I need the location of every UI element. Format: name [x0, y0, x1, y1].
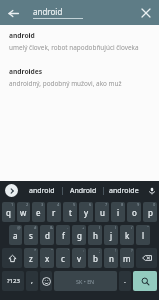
staticText: r	[52, 207, 56, 218]
button[interactable]: More suggestions	[5, 184, 18, 197]
staticText: d	[45, 230, 50, 241]
button[interactable]: androide	[104, 181, 144, 200]
button[interactable]: Clear query	[137, 4, 155, 22]
staticText: 0	[153, 202, 156, 207]
staticText: (	[99, 225, 101, 230]
button[interactable]: Backspace	[136, 248, 157, 268]
button[interactable]: l	[136, 225, 150, 245]
staticText: x	[45, 253, 50, 264]
button[interactable]: .	[119, 271, 131, 291]
staticText: &	[50, 225, 53, 230]
button[interactable]: r	[47, 202, 61, 222]
button[interactable]: u	[95, 202, 109, 222]
staticText: .	[124, 276, 126, 286]
staticText: ?123	[7, 277, 20, 285]
staticText: androides	[9, 67, 43, 76]
staticText: q	[6, 207, 11, 218]
button[interactable]: Emoji	[40, 271, 52, 291]
staticText: android	[9, 31, 35, 40]
button[interactable]: s	[24, 225, 38, 245]
staticText: '	[68, 248, 69, 253]
staticText: u	[100, 207, 105, 218]
button[interactable]: android	[0, 30, 159, 53]
staticText: *	[34, 248, 37, 253]
staticText: w	[20, 207, 27, 218]
staticText: e	[36, 207, 41, 218]
button[interactable]: v	[72, 248, 86, 268]
button[interactable]: b	[88, 248, 102, 268]
staticText: "	[51, 248, 53, 253]
staticText: o	[132, 207, 137, 218]
button[interactable]: a	[9, 225, 22, 245]
staticText: h	[93, 230, 98, 241]
staticText: android	[33, 6, 63, 17]
staticText: android	[29, 186, 55, 196]
button[interactable]: o	[127, 202, 141, 222]
staticText: n	[109, 253, 114, 264]
staticText: s	[29, 230, 33, 241]
button[interactable]: c	[56, 248, 70, 268]
button[interactable]: q	[2, 202, 15, 222]
button[interactable]: d	[40, 225, 54, 245]
button[interactable]: ,	[26, 271, 38, 291]
staticText: ;	[99, 248, 101, 253]
staticText: l	[142, 230, 145, 241]
staticText: ?	[131, 248, 133, 253]
staticText: 8	[121, 202, 124, 207]
staticText: p	[148, 207, 153, 218]
staticText: umelý človek, robot napodobňujúci človek…	[9, 43, 139, 52]
button[interactable]: g	[72, 225, 86, 245]
button[interactable]: x	[40, 248, 54, 268]
staticText: j	[110, 230, 113, 241]
button[interactable]: j	[104, 225, 118, 245]
button[interactable]: Voice input	[144, 181, 159, 200]
button[interactable]: androides	[0, 66, 159, 89]
button[interactable]: z	[24, 248, 38, 268]
button[interactable]: w	[17, 202, 30, 222]
button[interactable]: h	[88, 225, 102, 245]
button[interactable]: Back	[3, 3, 23, 23]
staticText: @	[17, 225, 21, 230]
staticText: ,	[31, 276, 33, 286]
staticText: 7	[105, 202, 108, 207]
staticText: /	[131, 225, 133, 230]
button[interactable]: p	[143, 202, 157, 222]
button[interactable]: SK • EN	[54, 271, 117, 291]
button[interactable]: y	[79, 202, 93, 222]
staticText: m	[123, 253, 131, 264]
staticText: 2	[26, 202, 29, 207]
staticText: g	[77, 230, 82, 241]
staticText: +	[82, 225, 85, 230]
staticText: c	[61, 253, 65, 264]
staticText: 9	[137, 202, 140, 207]
button[interactable]: Android	[63, 181, 103, 200]
button[interactable]: m	[120, 248, 134, 268]
staticText: -	[67, 225, 69, 230]
staticText: "	[147, 225, 149, 230]
staticText: b	[93, 253, 98, 264]
staticText: :	[83, 248, 85, 253]
staticText: !	[115, 248, 117, 253]
button[interactable]: i	[111, 202, 125, 222]
button[interactable]: n	[104, 248, 118, 268]
staticText: 1	[11, 202, 14, 207]
staticText: #	[34, 225, 37, 230]
staticText: )	[115, 225, 117, 230]
staticText: k	[125, 230, 130, 241]
staticText: i	[117, 207, 120, 218]
staticText: SK • EN	[76, 278, 95, 285]
staticText: a	[13, 230, 18, 241]
button[interactable]: Search	[133, 271, 157, 291]
button[interactable]: ?123	[2, 271, 24, 291]
button[interactable]: k	[120, 225, 134, 245]
staticText: t	[69, 207, 72, 218]
button[interactable]: e	[32, 202, 45, 222]
button[interactable]: f	[56, 225, 70, 245]
staticText: 6	[89, 202, 92, 207]
staticText: y	[84, 207, 89, 218]
staticText: f	[62, 230, 65, 241]
button[interactable]: Shift	[2, 248, 22, 268]
staticText: 3	[41, 202, 44, 207]
button[interactable]: android	[22, 181, 62, 200]
button[interactable]: t	[63, 202, 77, 222]
